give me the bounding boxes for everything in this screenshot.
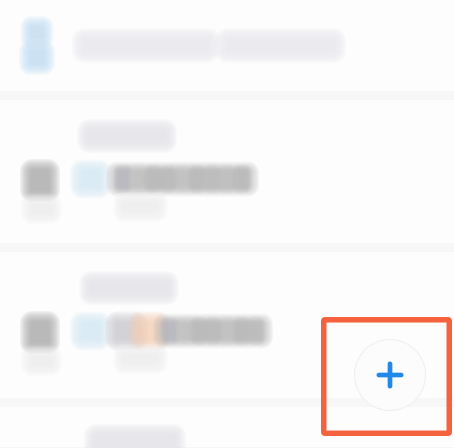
button[interactable]: Compose <box>349 334 431 416</box>
button[interactable] <box>0 0 454 91</box>
button[interactable] <box>0 170 454 214</box>
button[interactable] <box>0 322 454 366</box>
